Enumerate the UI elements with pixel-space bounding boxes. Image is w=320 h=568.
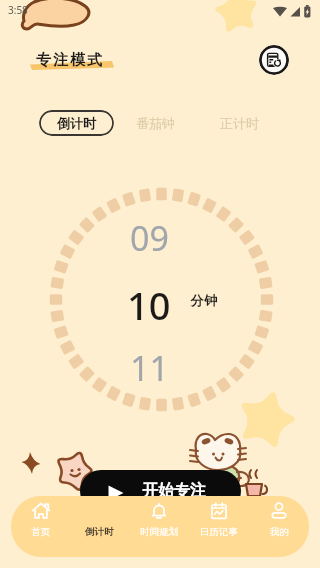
staticText: 日历记事 [200,526,238,538]
staticText: 时间规划 [140,526,178,538]
staticText: 3:58 [8,3,28,17]
button[interactable]: 倒计时 [39,110,114,136]
staticText: 首页 [31,526,50,538]
staticText: 我的 [270,526,289,538]
staticText: 专注模式 [35,51,103,70]
staticText: 倒计时 [57,115,96,131]
button[interactable]: 正计时 [216,110,263,136]
staticText: 番茄钟 [136,115,175,131]
button[interactable]: 日历记事 [189,496,249,557]
button[interactable]: 我的 [249,496,309,557]
button[interactable]: 首页 [11,496,70,557]
staticText: 倒计时 [85,526,114,538]
staticText: 开始专注 [142,481,206,501]
staticText: 10 [127,279,171,331]
button[interactable]: 时间规划 [129,496,189,557]
button[interactable]: 番茄钟 [132,110,179,136]
staticText: 09 [130,215,169,261]
button[interactable]: 开始专注 [80,470,241,512]
staticText: 11 [130,345,169,391]
button[interactable]: History records [259,45,289,75]
staticText: 分钟 [190,292,218,308]
button[interactable]: 倒计时 [70,496,129,557]
staticText: 正计时 [220,115,259,131]
